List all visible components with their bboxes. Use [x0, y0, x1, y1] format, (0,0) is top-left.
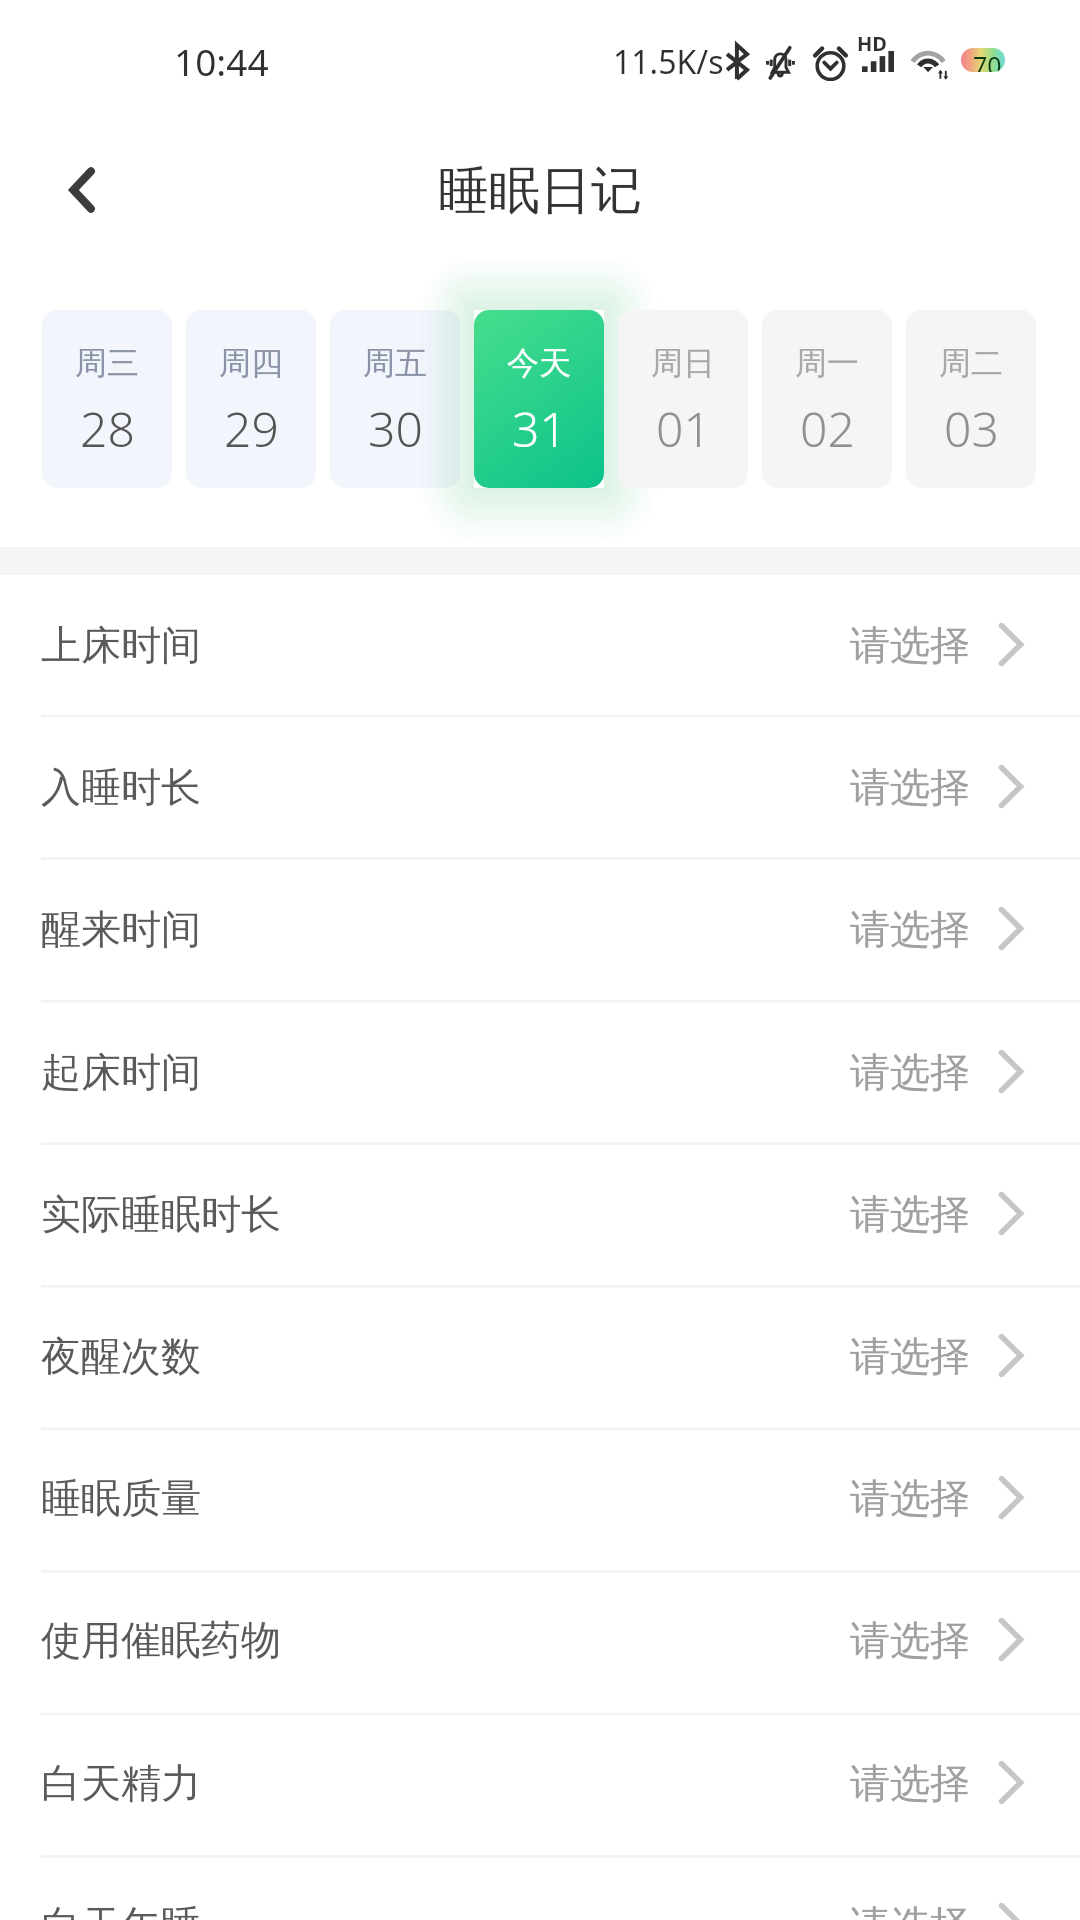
button[interactable]: 夜醒次数	[0, 1286, 1080, 1425]
staticText: 30	[368, 396, 423, 461]
staticText: 周三	[75, 343, 139, 383]
button[interactable]: 白天精力	[0, 1713, 1080, 1852]
staticText: 周一	[795, 343, 859, 383]
staticText: 请选择	[850, 1331, 970, 1381]
staticText: 请选择	[850, 620, 970, 670]
button[interactable]: 周四	[186, 310, 316, 488]
staticText: 使用催眠药物	[41, 1615, 281, 1665]
staticText: 睡眠质量	[41, 1473, 201, 1523]
staticText: 29	[224, 396, 279, 461]
staticText: 28	[80, 396, 135, 461]
staticText: 周日	[651, 343, 715, 383]
staticText: 今天	[507, 343, 571, 383]
button[interactable]: 周日	[618, 310, 748, 488]
staticText: 实际睡眠时长	[41, 1189, 281, 1239]
button[interactable]: 周三	[42, 310, 172, 488]
staticText: 夜醒次数	[41, 1331, 201, 1381]
staticText: 请选择	[850, 904, 970, 954]
button[interactable]: 周二	[906, 310, 1036, 488]
button[interactable]: 醒来时间	[0, 859, 1080, 998]
staticText: 上床时间	[41, 620, 201, 670]
staticText: 周二	[939, 343, 1003, 383]
button[interactable]: 白天午睡	[0, 1855, 1080, 1920]
staticText: 03	[944, 396, 999, 461]
button[interactable]: 入睡时长	[0, 717, 1080, 856]
staticText: 请选择	[850, 1473, 970, 1523]
staticText: 睡眠日记	[438, 159, 642, 223]
staticText: 起床时间	[41, 1047, 201, 1097]
staticText: 请选择	[850, 1047, 970, 1097]
staticText: 请选择	[850, 1758, 970, 1808]
staticText: 02	[800, 396, 855, 461]
button[interactable]: 使用催眠药物	[0, 1570, 1080, 1709]
staticText: 白天精力	[41, 1758, 201, 1808]
staticText: 请选择	[850, 1900, 970, 1920]
staticText: 请选择	[850, 1189, 970, 1239]
button[interactable]: 今天	[474, 310, 604, 488]
button[interactable]: 周五	[330, 310, 460, 488]
staticText: 10:44	[174, 36, 269, 86]
button[interactable]: 起床时间	[0, 1002, 1080, 1141]
staticText: 入睡时长	[41, 762, 201, 812]
staticText: 请选择	[850, 762, 970, 812]
staticText: 周五	[363, 343, 427, 383]
button[interactable]: 周一	[762, 310, 892, 488]
staticText: HD	[857, 30, 887, 57]
staticText: 31	[512, 396, 567, 461]
staticText: 11.5K/s	[613, 40, 724, 84]
staticText: 70	[973, 48, 1002, 72]
staticText: 醒来时间	[41, 904, 201, 954]
staticText: 01	[656, 396, 711, 461]
staticText: 白天午睡	[41, 1900, 201, 1920]
button[interactable]: 上床时间	[0, 575, 1080, 714]
button[interactable]: 睡眠质量	[0, 1428, 1080, 1567]
button[interactable]: Back	[36, 143, 130, 237]
staticText: 周四	[219, 343, 283, 383]
staticText: 请选择	[850, 1615, 970, 1665]
button[interactable]: 实际睡眠时长	[0, 1144, 1080, 1283]
